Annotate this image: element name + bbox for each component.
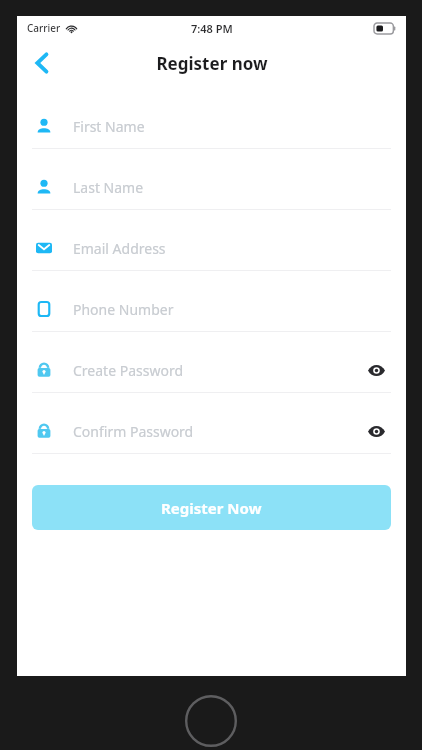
staticText: Last Name [73, 178, 144, 197]
button[interactable]: Toggle password visibility [361, 416, 391, 446]
button[interactable]: Confirm Password [32, 409, 391, 470]
button[interactable]: Phone Number [32, 287, 391, 348]
staticText: Register Now [161, 498, 262, 518]
button[interactable]: First Name [32, 104, 391, 165]
other: Home [185, 695, 237, 747]
button[interactable]: Last Name [32, 165, 391, 226]
button[interactable]: Register Now [32, 485, 391, 530]
staticText: First Name [73, 117, 145, 136]
staticText: Confirm Password [73, 422, 194, 441]
button[interactable]: Email Address [32, 226, 391, 287]
staticText: Register now [156, 52, 268, 75]
staticText: Carrier [27, 21, 61, 35]
button[interactable]: Toggle password visibility [361, 355, 391, 385]
staticText: 7:48 PM [191, 21, 233, 36]
button[interactable]: Back [21, 43, 61, 83]
staticText: Phone Number [73, 300, 174, 319]
staticText: Email Address [73, 239, 166, 258]
button[interactable]: Create Password [32, 348, 391, 409]
staticText: Create Password [73, 361, 184, 380]
